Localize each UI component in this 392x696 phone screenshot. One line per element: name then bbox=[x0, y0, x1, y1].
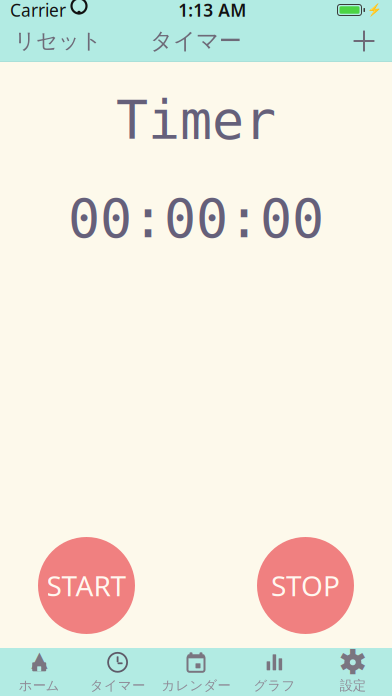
button[interactable]: ✱ bbox=[314, 648, 392, 696]
staticText: Timer bbox=[116, 90, 276, 150]
button[interactable]: ▲ bbox=[0, 648, 78, 696]
staticText: Carrier bbox=[10, 0, 66, 21]
staticText: STOP bbox=[271, 567, 340, 604]
staticText: カレンダー bbox=[161, 677, 230, 694]
staticText: ✱ bbox=[338, 643, 367, 682]
staticText: ▲ bbox=[31, 647, 47, 671]
button[interactable]: Add bbox=[336, 20, 392, 62]
staticText: ホーム bbox=[19, 677, 60, 694]
staticText: 00:00:00 bbox=[68, 188, 324, 249]
staticText: 1:13 AM bbox=[178, 0, 246, 21]
button[interactable]: START bbox=[38, 537, 135, 634]
button[interactable]: STOP bbox=[257, 537, 354, 634]
staticText: タイマー bbox=[90, 677, 145, 694]
button[interactable]: グラフ bbox=[235, 648, 314, 696]
staticText: ⚡ bbox=[367, 3, 382, 17]
staticText: リセット bbox=[14, 28, 102, 54]
staticText: グラフ bbox=[253, 677, 295, 694]
staticText: START bbox=[46, 567, 126, 604]
button[interactable]: リセット bbox=[0, 20, 116, 62]
staticText: 設定 bbox=[340, 677, 366, 694]
button[interactable]: タイマー bbox=[78, 648, 157, 696]
button[interactable]: カレンダー bbox=[157, 648, 235, 696]
staticText: タイマー bbox=[150, 27, 242, 55]
staticText bbox=[66, 0, 71, 21]
